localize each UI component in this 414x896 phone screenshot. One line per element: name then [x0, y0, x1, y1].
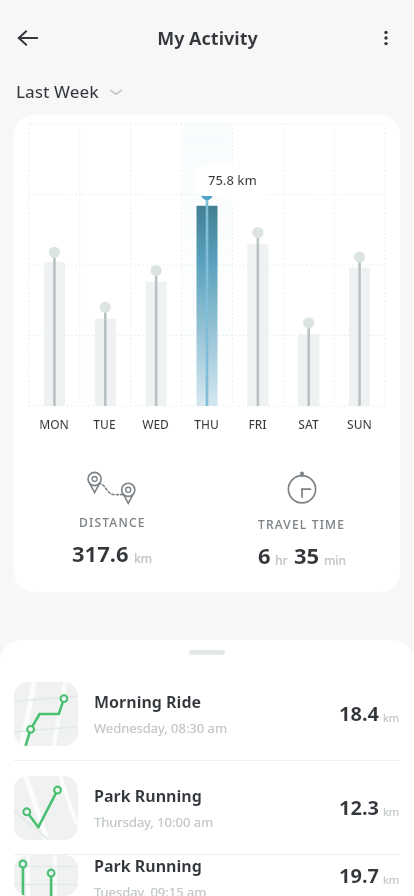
staticText: SUN [347, 416, 372, 432]
staticText: km [383, 804, 400, 819]
staticText: Last Week [16, 80, 99, 103]
staticText: km [383, 710, 400, 725]
staticText: Wednesday, 08:30 am [94, 719, 228, 737]
staticText: 35 [294, 540, 320, 570]
staticText: min [324, 552, 347, 568]
button[interactable]: Park Running [0, 855, 414, 896]
button[interactable]: More options [364, 16, 408, 60]
staticText: 317.6 [72, 538, 129, 568]
staticText: 12.3 [339, 794, 379, 821]
button[interactable]: TRAVEL TIME [214, 452, 390, 576]
staticText: TRAVEL TIME [258, 516, 346, 532]
button[interactable]: Back [6, 16, 50, 60]
staticText: DISTANCE [79, 514, 146, 530]
staticText: 19.7 [339, 862, 379, 889]
staticText: 75.8 km [208, 171, 257, 189]
staticText: Tuesday, 09:15 am [94, 883, 207, 896]
staticText: Park Running [94, 785, 202, 807]
staticText: km [134, 550, 153, 566]
staticText: km [383, 872, 400, 887]
staticText: SAT [298, 416, 319, 432]
button[interactable]: Last Week [10, 76, 129, 107]
staticText: FRI [248, 416, 267, 432]
staticText: Morning Ride [94, 691, 202, 713]
staticText: MON [39, 416, 69, 432]
staticText: WED [142, 416, 169, 432]
button[interactable]: DISTANCE [24, 452, 200, 576]
button[interactable]: Park Running [0, 761, 414, 854]
staticText: 18.4 [339, 700, 379, 727]
staticText: hr [275, 552, 288, 568]
staticText: 6 [258, 540, 271, 570]
staticText: My Activity [157, 26, 258, 51]
staticText: Park Running [94, 855, 202, 877]
button[interactable]: Morning Ride [0, 667, 414, 760]
staticText: TUE [93, 416, 116, 432]
staticText: Thursday, 10:00 am [94, 813, 214, 831]
staticText: THU [194, 416, 219, 432]
